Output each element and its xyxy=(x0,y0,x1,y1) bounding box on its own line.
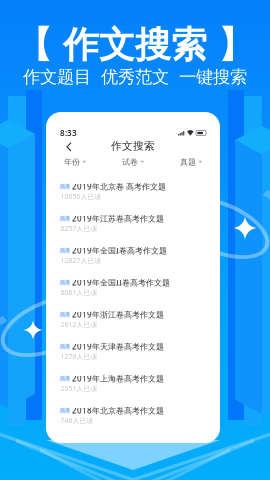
staticText: 高考 xyxy=(60,407,70,414)
staticText: 高考 xyxy=(60,375,70,382)
button[interactable]: 高考 xyxy=(46,367,220,399)
button[interactable]: 高考 xyxy=(46,303,220,335)
staticText: 2019年全国II卷高考作文题 xyxy=(72,277,170,288)
staticText: 高考 xyxy=(60,311,70,318)
staticText: 2019年浙江卷高考作文题 xyxy=(72,309,164,320)
staticText: 2612人已读 xyxy=(60,320,97,329)
staticText: 高考 xyxy=(60,215,70,222)
staticText: 作文题目 优秀范文 一键搜索 xyxy=(23,66,247,88)
staticText: 12827人已读 xyxy=(60,256,101,265)
staticText: 2019年上海卷高考作文题 xyxy=(72,373,164,384)
staticText: 8:33 xyxy=(60,128,77,138)
staticText: 高考 xyxy=(60,247,70,254)
staticText: 2019年全国I卷高考作文题 xyxy=(72,245,167,256)
staticText: 高考 xyxy=(60,279,70,286)
staticText: 真题 xyxy=(180,157,196,167)
staticText: 试卷 xyxy=(122,157,138,167)
staticText: 作文搜索 xyxy=(111,139,155,152)
button[interactable]: 真题 xyxy=(162,156,220,168)
staticText: 【 作文搜索 】 xyxy=(16,23,254,67)
button[interactable]: 高考 xyxy=(46,207,220,239)
staticText: 746人已读 xyxy=(60,416,93,425)
staticText: 10050人已读 xyxy=(60,192,101,201)
staticText: 2019年北京卷 高考作文题 xyxy=(72,181,166,192)
button[interactable]: 高考 xyxy=(46,175,220,207)
staticText: 8061人已读 xyxy=(60,288,97,297)
button[interactable]: 返回 xyxy=(58,134,80,160)
staticText: 6257人已读 xyxy=(60,224,97,233)
staticText: 年份 xyxy=(64,157,80,167)
staticText: 2018年北京卷高考作文题 xyxy=(72,405,164,416)
staticText: 2019年天津卷高考作文题 xyxy=(72,341,164,352)
staticText: 2051人已读 xyxy=(60,384,97,393)
staticText: 高考 xyxy=(60,343,70,350)
staticText: 1276人已读 xyxy=(60,352,97,361)
staticText: 2019年江苏卷高考作文题 xyxy=(72,213,164,224)
button[interactable]: 高考 xyxy=(46,239,220,271)
button[interactable]: 高考 xyxy=(46,335,220,367)
button[interactable]: 试卷 xyxy=(104,156,162,168)
button[interactable]: 高考 xyxy=(46,399,220,431)
button[interactable]: 年份 xyxy=(46,156,104,168)
button[interactable]: 高考 xyxy=(46,271,220,303)
staticText: 高考 xyxy=(60,183,70,190)
